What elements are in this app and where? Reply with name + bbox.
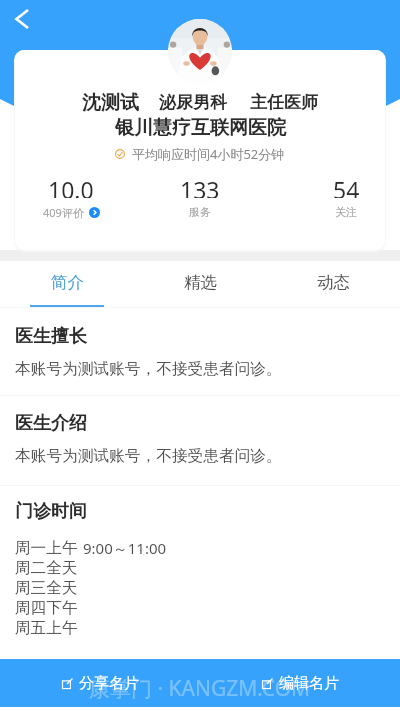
button[interactable]: Doctor avatar — [168, 19, 232, 83]
button[interactable]: 133 — [140, 176, 260, 226]
button[interactable]: 分享名片 — [0, 659, 200, 707]
button[interactable]: 10.0 — [11, 176, 131, 226]
staticText: 409评价 — [43, 205, 84, 220]
staticText: 周一上午 — [15, 538, 78, 558]
staticText: 主任医师 — [250, 92, 318, 113]
staticText: 关注 — [335, 205, 357, 219]
button[interactable]: 动态 — [267, 261, 400, 307]
button[interactable]: Back — [7, 4, 37, 34]
button[interactable]: 编辑名片 — [200, 659, 400, 707]
button[interactable]: 54 — [286, 176, 400, 226]
staticText: 编辑名片 — [279, 674, 339, 693]
staticText: 门诊时间 — [15, 500, 87, 523]
button[interactable]: 精选 — [134, 261, 267, 307]
staticText: 沈测试 — [82, 91, 139, 114]
staticText: 周五上午 — [15, 618, 78, 638]
staticText: 分享名片 — [79, 674, 139, 693]
staticText: 康掌门 · KANGZM.COM — [89, 674, 311, 700]
staticText: 周三全天 — [15, 578, 78, 598]
staticText: 10.0 — [48, 174, 94, 198]
staticText: 泌尿男科 — [159, 92, 227, 113]
staticText: 本账号为测试账号，不接受患者问诊。 — [15, 359, 282, 379]
button[interactable]: 简介 — [0, 261, 134, 307]
staticText: 动态 — [317, 272, 350, 293]
staticText: 平均响应时间4小时52分钟 — [132, 145, 285, 163]
staticText: 银川慧疗互联网医院 — [115, 116, 286, 140]
staticText: 服务 — [189, 205, 211, 219]
staticText: 医生擅长 — [15, 325, 87, 348]
staticText: 9:00～11:00 — [83, 538, 167, 558]
staticText: 医生介绍 — [15, 412, 87, 435]
staticText: 简介 — [51, 272, 84, 293]
staticText: 精选 — [184, 272, 217, 293]
staticText: 本账号为测试账号，不接受患者问诊。 — [15, 446, 282, 466]
staticText: 133 — [180, 174, 220, 198]
staticText: 周四下午 — [15, 598, 78, 618]
staticText: 周二全天 — [15, 558, 78, 578]
staticText: 54 — [333, 174, 360, 198]
